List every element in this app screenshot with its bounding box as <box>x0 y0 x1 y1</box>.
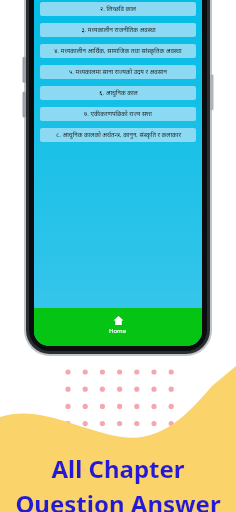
staticText: Home <box>109 327 127 335</box>
staticText: ४. मध्यकालीन आर्थिक, सामाजिक तथा सांस्कृ… <box>54 47 182 55</box>
button[interactable]: ५. मध्यकालमा साना राज्यको उदय र अवसान <box>40 65 196 79</box>
button[interactable]: ७. एकीकरणपछिको राज्य सत्ता <box>40 107 196 121</box>
staticText: २. लिच्छवि काल <box>100 5 136 13</box>
button[interactable]: Home <box>34 308 202 346</box>
button[interactable]: ४. मध्यकालीन आर्थिक, सामाजिक तथा सांस्कृ… <box>40 44 196 58</box>
staticText: ६. आधुनिक काल <box>99 89 138 97</box>
button[interactable]: ८. आधुनिक कालको अर्थतन्त्र, कानुन, संस्क… <box>40 128 196 142</box>
staticText: ३. मध्यकालीन राजनीतिक अवस्था <box>81 26 156 34</box>
staticText: Question Answer <box>15 487 221 512</box>
staticText: All Chapter <box>51 452 185 485</box>
staticText: ८. आधुनिक कालको अर्थतन्त्र, कानुन, संस्क… <box>56 131 181 139</box>
button[interactable]: ३. मध्यकालीन राजनीतिक अवस्था <box>40 23 196 37</box>
staticText: ७. एकीकरणपछिको राज्य सत्ता <box>84 110 152 118</box>
staticText: ५. मध्यकालमा साना राज्यको उदय र अवसान <box>69 68 167 76</box>
button[interactable]: ६. आधुनिक काल <box>40 86 196 100</box>
button[interactable]: २. लिच्छवि काल <box>40 2 196 16</box>
